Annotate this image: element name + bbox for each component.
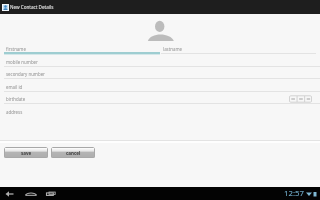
staticText: cancel (66, 150, 81, 156)
button[interactable]: Recents (44, 187, 58, 200)
button[interactable]: Home (23, 187, 39, 200)
staticText: birthdate (6, 96, 26, 102)
staticText: save (21, 150, 32, 156)
staticText: mobile number (6, 59, 38, 65)
staticText: 12:57 (284, 188, 304, 199)
button[interactable]: cancel (51, 147, 95, 158)
staticText: lastname (163, 46, 183, 52)
button[interactable] (4, 48, 160, 56)
staticText: New Contact Details (10, 4, 54, 10)
staticText: address (6, 109, 23, 115)
button[interactable]: save (4, 147, 48, 158)
button[interactable]: Back (3, 187, 16, 200)
button[interactable]: Pick date (289, 95, 312, 103)
staticText: email id (6, 84, 23, 90)
staticText: firstname (6, 46, 26, 52)
staticText: secondary number (6, 71, 45, 77)
